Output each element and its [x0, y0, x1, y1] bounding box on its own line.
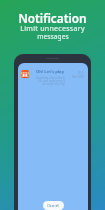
staticText: Limit unnecessary [20, 23, 85, 33]
button[interactable]: Clear all [43, 201, 64, 210]
staticText: messages [37, 32, 69, 41]
staticText: %A 9:007 [72, 75, 84, 79]
staticText: Clear all [47, 204, 60, 208]
staticText: Oh! Let's play [36, 69, 65, 75]
button[interactable]: Oh! Let's play [18, 69, 88, 85]
staticText: Anything else is the best thing for you … [36, 76, 65, 86]
staticText: Notification [18, 10, 87, 26]
staticText: 20.3 [78, 71, 84, 75]
